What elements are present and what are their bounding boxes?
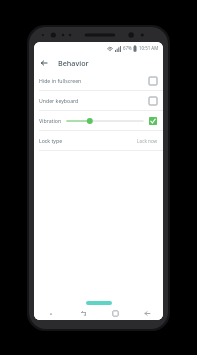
staticText: 10:51 AM (139, 45, 159, 51)
button[interactable]: Vibration enabled (147, 115, 158, 126)
staticText: Lock type (39, 137, 63, 144)
staticText: 67% (123, 45, 132, 51)
button[interactable]: Back (131, 306, 163, 320)
button[interactable]: Home (99, 306, 131, 320)
button[interactable]: Toggle (147, 95, 158, 106)
staticText: Under keyboard (39, 97, 79, 104)
staticText: Hide in fullscreen (39, 77, 82, 84)
button[interactable]: Lock type (34, 131, 163, 150)
button[interactable]: Vibration strength (67, 115, 143, 127)
button[interactable]: Toggle (147, 75, 158, 86)
staticText: Behavior (58, 58, 89, 68)
button[interactable]: Switch input (67, 306, 99, 320)
button[interactable]: Hide in fullscreen (34, 71, 163, 90)
staticText: Lock now (137, 138, 158, 144)
button[interactable]: Under keyboard (34, 91, 163, 110)
button[interactable]: Back (38, 57, 50, 69)
staticText: Vibration (39, 117, 62, 124)
button[interactable]: Vibration (34, 111, 163, 130)
button[interactable]: Keyboard indicator (86, 301, 112, 305)
button[interactable]: Menu (34, 306, 67, 320)
